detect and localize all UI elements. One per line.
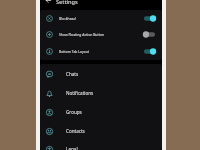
staticText: Notifications	[66, 90, 94, 96]
button[interactable]: Contacts	[40, 122, 162, 140]
staticText: Blockhead	[59, 16, 76, 21]
staticText: Bottom Tab Layout	[59, 49, 90, 54]
button[interactable]: Blockhead	[40, 10, 162, 26]
button[interactable]: Chats	[40, 65, 162, 83]
staticText: Groups	[66, 109, 82, 115]
button[interactable]: Notifications	[40, 84, 162, 102]
button[interactable]: Back	[44, 0, 53, 5]
staticText: Settings	[56, 0, 78, 6]
staticText: Legal	[66, 146, 78, 150]
staticText: Show Floating Action Button	[59, 32, 105, 37]
button[interactable]: Groups	[40, 103, 162, 121]
button[interactable]: Legal	[40, 140, 162, 150]
staticText: Contacts	[66, 128, 85, 134]
button[interactable]: Show Floating Action Button	[40, 26, 162, 42]
button[interactable]: Bottom Tab Layout	[40, 43, 162, 59]
staticText: Chats	[66, 71, 79, 77]
